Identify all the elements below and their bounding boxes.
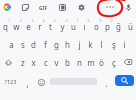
- staticText: b: [65, 57, 70, 68]
- staticText: GIF: [39, 5, 48, 11]
- button[interactable]: g: [51, 35, 62, 53]
- button[interactable]: ,: [22, 74, 33, 92]
- button[interactable]: h: [62, 35, 73, 53]
- button[interactable]: z: [17, 53, 28, 71]
- button[interactable]: Search: [115, 75, 134, 86]
- button[interactable]: Stickers: [18, 0, 32, 14]
- button[interactable]: Clipboard: [55, 0, 69, 14]
- staticText: ö: [99, 57, 104, 68]
- button[interactable]: b: [62, 53, 73, 71]
- button[interactable]: Backspace: [121, 55, 135, 69]
- staticText: ?123: [4, 78, 17, 86]
- staticText: m: [87, 57, 95, 68]
- staticText: w: [13, 21, 20, 32]
- button[interactable]: d: [28, 35, 39, 53]
- staticText: o: [94, 21, 99, 32]
- staticText: .: [105, 78, 108, 89]
- button[interactable]: k: [85, 35, 96, 53]
- staticText: ç: [112, 57, 116, 68]
- staticText: p: [105, 21, 110, 32]
- staticText: ü: [128, 21, 133, 32]
- button[interactable]: ğ: [113, 17, 124, 35]
- staticText: ,: [26, 78, 29, 89]
- button[interactable]: v: [51, 53, 62, 71]
- button[interactable]: ç: [108, 53, 119, 71]
- staticText: j: [78, 39, 81, 50]
- staticText: z: [21, 57, 25, 68]
- staticText: t: [49, 21, 52, 32]
- staticText: 2: [19, 18, 22, 23]
- button[interactable]: n: [74, 53, 85, 71]
- staticText: f: [44, 39, 47, 50]
- staticText: s: [21, 39, 25, 50]
- button[interactable]: ü: [125, 17, 136, 35]
- button[interactable]: i: [119, 35, 130, 53]
- staticText: d: [31, 39, 36, 50]
- staticText: u: [71, 21, 76, 32]
- button[interactable]: q: [0, 17, 11, 35]
- staticText: ı: [83, 21, 86, 32]
- staticText: v: [54, 57, 59, 68]
- button[interactable]: .: [101, 74, 112, 92]
- button[interactable]: r: [34, 17, 45, 35]
- button[interactable]: Voice input: [121, 0, 135, 14]
- staticText: 6: [65, 18, 68, 23]
- button[interactable]: o: [91, 17, 102, 35]
- button[interactable]: a: [6, 35, 17, 53]
- staticText: i: [123, 39, 126, 50]
- staticText: 4: [42, 18, 45, 23]
- staticText: c: [44, 57, 48, 68]
- staticText: a: [9, 39, 14, 50]
- button[interactable]: Settings: [74, 0, 88, 14]
- staticText: 5: [53, 18, 56, 23]
- staticText: h: [65, 39, 70, 50]
- button[interactable]: f: [40, 35, 51, 53]
- staticText: 3: [31, 18, 34, 23]
- button[interactable]: m: [85, 53, 96, 71]
- button[interactable]: c: [40, 53, 51, 71]
- staticText: 1: [8, 18, 11, 23]
- button[interactable]: e: [23, 17, 34, 35]
- button[interactable]: More options: [103, 0, 117, 14]
- staticText: ğ: [116, 21, 121, 32]
- staticText: 0: [110, 18, 113, 23]
- button[interactable]: Google: [0, 0, 14, 14]
- button[interactable]: u: [68, 17, 79, 35]
- staticText: n: [77, 57, 82, 68]
- button[interactable]: Emoji: [34, 75, 48, 89]
- button[interactable]: Shift: [1, 55, 15, 69]
- button[interactable]: w: [11, 17, 22, 35]
- button[interactable]: ö: [96, 53, 107, 71]
- button[interactable]: ?123: [0, 74, 20, 90]
- button[interactable]: s: [17, 35, 28, 53]
- button[interactable]: l: [96, 35, 107, 53]
- staticText: ş: [112, 39, 116, 50]
- staticText: e: [26, 21, 31, 32]
- button[interactable]: p: [102, 17, 113, 35]
- staticText: g: [54, 39, 59, 50]
- staticText: l: [100, 39, 103, 50]
- staticText: 8: [87, 18, 90, 23]
- staticText: 9: [99, 18, 102, 23]
- button[interactable]: GIF: [36, 0, 51, 15]
- button[interactable]: t: [45, 17, 56, 35]
- staticText: k: [88, 39, 93, 50]
- staticText: 7: [76, 18, 79, 23]
- button[interactable]: ı: [79, 17, 90, 35]
- button[interactable]: j: [74, 35, 85, 53]
- button[interactable]: x: [28, 53, 39, 71]
- staticText: y: [60, 21, 65, 32]
- staticText: x: [31, 57, 36, 68]
- staticText: q: [3, 21, 8, 32]
- button[interactable]: y: [57, 17, 68, 35]
- button[interactable]: ş: [108, 35, 119, 53]
- staticText: r: [38, 21, 42, 32]
